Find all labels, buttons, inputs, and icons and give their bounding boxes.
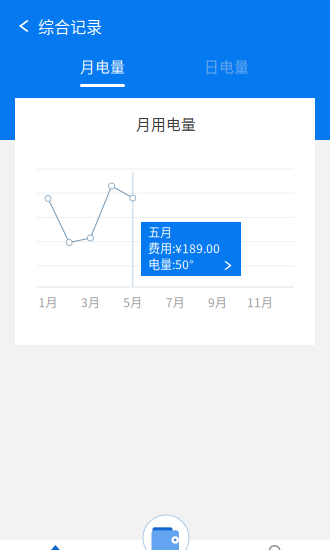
button[interactable]: Home — [0, 540, 110, 550]
button[interactable]: 日电量 — [175, 56, 278, 87]
staticText: 9月 — [208, 293, 227, 311]
staticText: 电量:50° — [148, 255, 193, 273]
staticText: 五月 — [148, 223, 172, 241]
staticText: 综合记录 — [38, 14, 102, 38]
staticText: 11月 — [247, 293, 273, 311]
button[interactable]: Wallet — [143, 515, 189, 550]
staticText: 费用:¥189.00 — [148, 239, 220, 257]
staticText: 月电量 — [80, 55, 125, 77]
button[interactable]: 月电量 — [51, 56, 154, 87]
staticText: 3月 — [81, 293, 100, 311]
staticText: 月用电量 — [136, 113, 196, 134]
button[interactable]: Profile — [220, 540, 330, 550]
staticText: 7月 — [166, 293, 185, 311]
button[interactable]: Back — [12, 12, 32, 40]
button[interactable]: 五月 — [141, 222, 241, 276]
staticText: 日电量 — [204, 55, 249, 77]
staticText: 1月 — [38, 293, 57, 311]
staticText: 5月 — [123, 293, 142, 311]
